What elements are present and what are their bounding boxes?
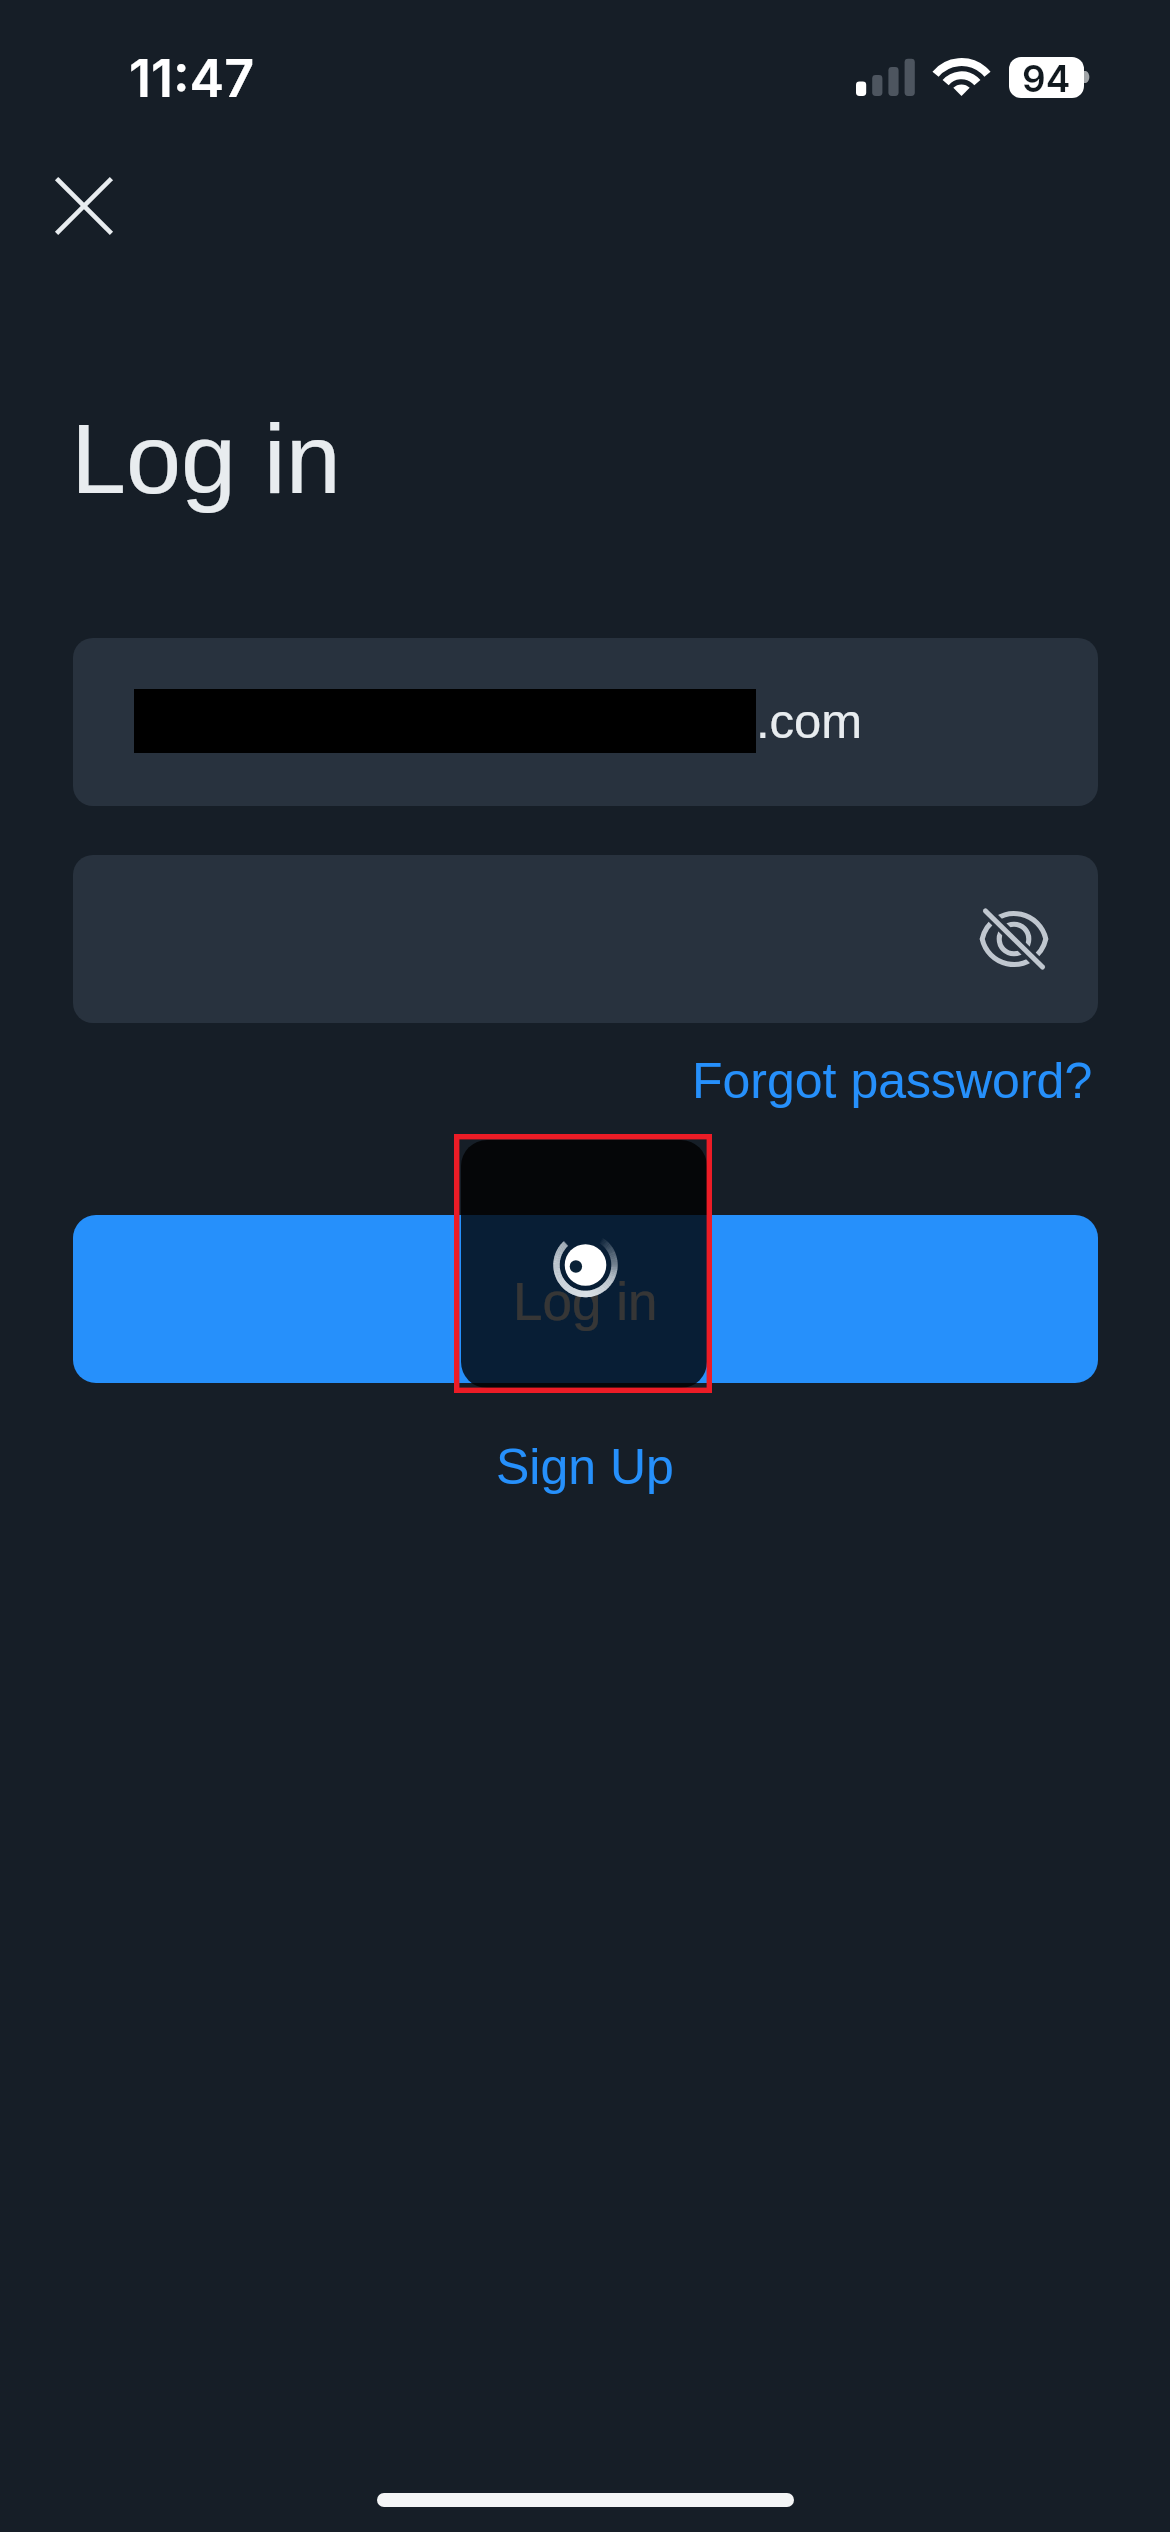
staticText: 11:47 (129, 47, 255, 110)
staticText: Log in (513, 1272, 658, 1331)
staticText: 94 (1022, 57, 1071, 97)
button[interactable]: .com (73, 638, 1098, 806)
staticText: Sign Up (496, 1439, 674, 1495)
button[interactable]: Close (28, 150, 140, 262)
staticText: .com (756, 694, 863, 749)
button[interactable]: Forgot password? (674, 1043, 1111, 1119)
staticText: Forgot password? (692, 1053, 1093, 1109)
staticText: Log in (71, 403, 341, 514)
button[interactable]: Show password (73, 855, 1098, 1023)
button[interactable]: Sign Up (472, 1427, 698, 1507)
button[interactable]: Show password (962, 887, 1066, 991)
button[interactable]: Log in (73, 1215, 1098, 1383)
